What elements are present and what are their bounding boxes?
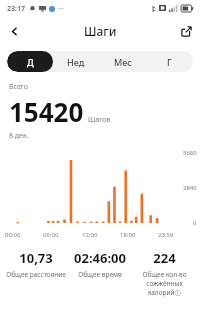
staticText: 06:00: [43, 231, 59, 239]
button[interactable]: Г: [146, 51, 193, 72]
staticText: 02:46:00: [74, 249, 126, 267]
staticText: 0: [193, 219, 197, 227]
button[interactable]: 02:46:00: [68, 249, 132, 279]
staticText: 23:59: [158, 231, 174, 239]
staticText: 10,73: [19, 249, 53, 267]
staticText: 00:00: [5, 231, 21, 239]
staticText: Общее кол-во сожжённых калорийⓘ: [142, 270, 187, 297]
staticText: ···: [58, 4, 64, 14]
button[interactable]: Back: [0, 17, 28, 45]
button[interactable]: Нед: [53, 51, 99, 72]
staticText: 15420: [9, 94, 84, 129]
staticText: 224: [153, 249, 176, 267]
staticText: Всего: [9, 82, 28, 92]
staticText: 12:00: [82, 231, 98, 239]
staticText: 8 дек.: [9, 131, 29, 141]
staticText: Д: [27, 56, 34, 68]
staticText: 5680: [183, 149, 197, 157]
button[interactable]: Мес: [99, 51, 146, 72]
staticText: 18:00: [120, 231, 136, 239]
staticText: Нед: [67, 56, 85, 68]
staticText: 23:17: [7, 4, 25, 14]
button[interactable]: Share: [172, 17, 200, 45]
button[interactable]: 10,73: [4, 249, 68, 279]
staticText: Общее расстояние: [6, 270, 66, 279]
staticText: Шаги: [84, 23, 117, 39]
staticText: Шагов: [88, 115, 111, 125]
staticText: Мес: [114, 56, 132, 68]
button[interactable]: 224: [132, 249, 196, 297]
staticText: 2840: [183, 184, 197, 192]
staticText: Г: [167, 56, 172, 68]
staticText: Общее время: [78, 270, 122, 279]
button[interactable]: Д: [7, 51, 53, 72]
